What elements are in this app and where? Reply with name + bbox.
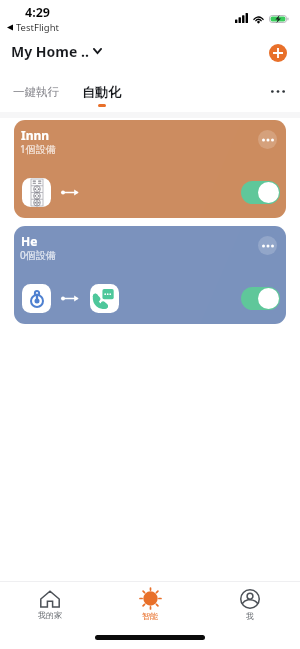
staticText: 智能 bbox=[142, 611, 158, 621]
staticText: 自動化 bbox=[82, 84, 121, 100]
staticText: 一鍵執行 bbox=[13, 85, 59, 99]
staticText: 我的家 bbox=[38, 610, 62, 620]
button[interactable]: More options bbox=[266, 82, 290, 100]
staticText: My Home .. bbox=[11, 42, 89, 61]
button[interactable]: He bbox=[14, 226, 286, 324]
staticText: 我 bbox=[246, 611, 254, 621]
button[interactable]: 我 bbox=[200, 582, 300, 627]
button[interactable]: 自動化 bbox=[78, 84, 125, 107]
button[interactable]: Add bbox=[269, 44, 287, 62]
staticText: 0個設備 bbox=[20, 248, 56, 262]
button[interactable]: Toggle scene bbox=[241, 181, 280, 204]
button[interactable]: 我的家 bbox=[0, 582, 100, 627]
staticText: Innn bbox=[21, 127, 50, 143]
staticText: He bbox=[21, 233, 38, 249]
button[interactable]: Innn bbox=[14, 120, 286, 218]
button[interactable]: 一鍵執行 bbox=[9, 80, 63, 104]
staticText: 4:29 bbox=[25, 4, 50, 21]
button[interactable]: Toggle scene bbox=[241, 287, 280, 310]
button[interactable]: Scene options bbox=[258, 236, 277, 255]
button[interactable]: 智能 bbox=[100, 582, 200, 627]
staticText: 1個設備 bbox=[20, 142, 56, 156]
button[interactable]: My Home .. bbox=[11, 42, 102, 61]
button[interactable]: Scene options bbox=[258, 130, 277, 149]
staticText: TestFlight bbox=[16, 21, 59, 34]
